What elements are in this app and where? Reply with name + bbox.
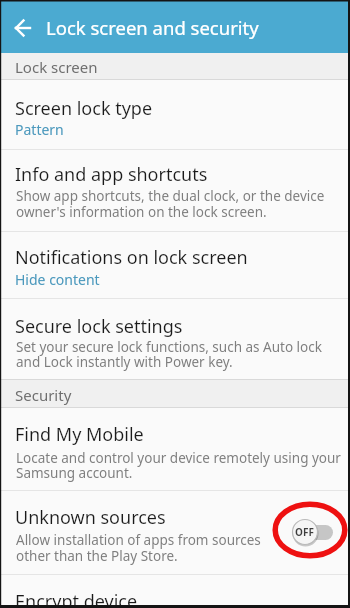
staticText: Find My Mobile [15,422,144,447]
staticText: Allow installation of apps from sources [16,531,261,549]
staticText: Samsung account. [16,464,133,482]
staticText: Locate and control your device remotely … [16,449,341,467]
staticText: Info and app shortcuts [15,162,208,187]
staticText: Lock screen and security [46,15,259,40]
staticText: and Lock instantly with Power key. [16,353,233,371]
staticText: Secure lock settings [15,314,183,339]
staticText: Lock screen [15,57,98,77]
button[interactable]: Secure lock settings [0,299,350,379]
staticText: Unknown sources [15,505,166,530]
staticText: Show app shortcuts, the dual clock, or t… [16,187,325,205]
button[interactable]: Unknown sources [0,491,350,574]
button[interactable]: Notifications on lock screen [0,232,350,298]
button[interactable] [285,512,340,552]
staticText: Notifications on lock screen [15,245,248,270]
staticText: Encrypt device [15,589,138,608]
staticText: owner's information on the lock screen. [16,203,267,221]
button[interactable]: Find My Mobile [0,408,350,490]
button[interactable]: Encrypt device [0,575,350,608]
staticText: OFF [295,525,314,539]
staticText: Screen lock type [15,96,153,121]
staticText: Set your secure lock functions, such as … [16,338,322,356]
staticText: Pattern [15,120,64,139]
button[interactable] [6,11,40,45]
staticText: other than the Play Store. [16,547,178,565]
button[interactable]: Screen lock type [0,80,350,149]
button[interactable]: Info and app shortcuts [0,150,350,231]
staticText: Hide content [15,270,100,289]
staticText: Security [15,385,72,405]
